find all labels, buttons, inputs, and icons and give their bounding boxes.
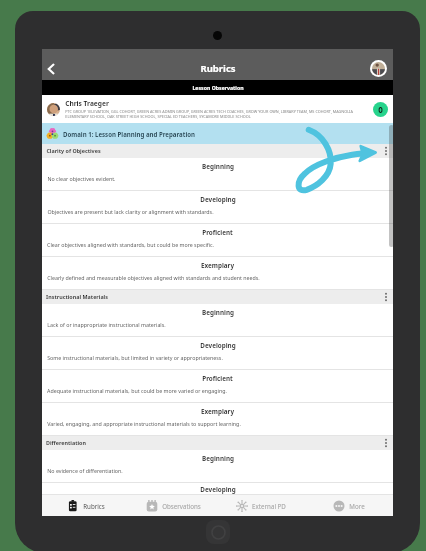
- staticText: External PD: [252, 502, 286, 510]
- staticText: More: [349, 502, 365, 510]
- staticText: Beginning: [202, 308, 234, 317]
- button[interactable]: Instructional Materials: [42, 290, 393, 304]
- button[interactable]: Beginning: [42, 450, 393, 483]
- button[interactable]: Observations: [129, 495, 217, 516]
- staticText: Developing: [200, 341, 236, 350]
- staticText: PTC GROUP 1ELEVATION, GGL COHORT, GREEN …: [65, 109, 353, 114]
- button[interactable]: Beginning: [42, 158, 393, 191]
- staticText: Developing: [200, 485, 236, 494]
- button[interactable]: Exemplary: [42, 257, 393, 290]
- staticText: 0: [378, 104, 383, 115]
- button[interactable]: Developing: [42, 483, 393, 495]
- button[interactable]: Beginning: [42, 304, 393, 337]
- staticText: Beginning: [202, 162, 234, 171]
- button[interactable]: More options: [382, 436, 390, 450]
- staticText: No clear objectives evident.: [47, 175, 116, 182]
- button[interactable]: Rubrics: [42, 495, 129, 516]
- staticText: Adequate instructional materials, but co…: [47, 387, 227, 394]
- staticText: Beginning: [202, 454, 234, 463]
- staticText: Clearly defined and measurable objective…: [47, 274, 260, 281]
- button[interactable]: Developing: [42, 337, 393, 370]
- staticText: Domain 1: Lesson Planning and Preparatio…: [63, 130, 195, 138]
- staticText: No evidence of differentiation.: [47, 467, 123, 474]
- button[interactable]: More options: [382, 290, 390, 304]
- staticText: Objectives are present but lack clarity …: [47, 208, 214, 215]
- staticText: Rubrics: [200, 62, 236, 75]
- staticText: Clear objectives aligned with standards,…: [47, 241, 214, 248]
- button[interactable]: Differentiation: [42, 436, 393, 450]
- staticText: Clarity of Objectives: [46, 147, 101, 154]
- staticText: Chris Traeger: [65, 99, 109, 108]
- button[interactable]: External PD: [217, 495, 305, 516]
- staticText: Exemplary: [201, 407, 234, 416]
- button[interactable]: More: [305, 495, 393, 516]
- staticText: Proficient: [202, 374, 233, 383]
- staticText: Varied, engaging, and appropriate instru…: [47, 420, 241, 427]
- staticText: Observations: [162, 502, 201, 510]
- button[interactable]: Proficient: [42, 224, 393, 257]
- button[interactable]: Profile: [370, 60, 387, 77]
- button[interactable]: Exemplary: [42, 403, 393, 436]
- staticText: Lack of or inappropriate instructional m…: [47, 321, 166, 328]
- staticText: ELEMENTARY SCHOOL, OAK STREET HIGH SCHOO…: [65, 114, 251, 119]
- button[interactable]: Back: [42, 49, 62, 80]
- button[interactable]: Clarity of Objectives: [42, 144, 393, 158]
- staticText: Developing: [200, 195, 236, 204]
- button[interactable]: Proficient: [42, 370, 393, 403]
- button[interactable]: Developing: [42, 191, 393, 224]
- button[interactable]: More options: [382, 144, 390, 158]
- staticText: Rubrics: [83, 502, 105, 510]
- staticText: Exemplary: [201, 261, 234, 270]
- staticText: Lesson Observation: [192, 84, 244, 91]
- staticText: Some instructional materials, but limite…: [47, 354, 223, 361]
- staticText: Instructional Materials: [46, 293, 108, 300]
- button[interactable]: Domain 1: Lesson Planning and Preparatio…: [42, 123, 393, 144]
- staticText: Differentiation: [46, 439, 86, 446]
- staticText: Proficient: [202, 228, 233, 237]
